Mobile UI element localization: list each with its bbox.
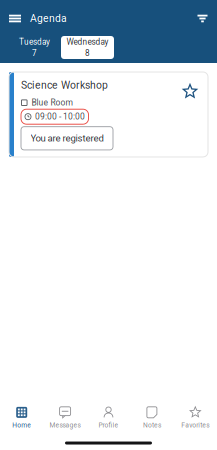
staticText: Profile	[98, 421, 118, 429]
button[interactable]: You are registered	[21, 127, 113, 150]
button[interactable]: Profile	[87, 400, 130, 436]
staticText: 09:00 - 10:00	[35, 112, 85, 122]
staticText: Wednesday	[66, 37, 108, 47]
button[interactable]: Home	[0, 400, 43, 436]
button[interactable]: Favorite	[184, 79, 202, 90]
staticText: Home	[12, 421, 31, 429]
staticText: Tuesday	[19, 37, 50, 47]
staticText: Science Workshop	[21, 79, 108, 91]
staticText: You are registered	[30, 133, 103, 144]
button[interactable]: Messages	[43, 400, 87, 436]
button[interactable]: Notes	[130, 400, 174, 436]
staticText: Messages	[50, 421, 81, 429]
button[interactable]: Menu	[0, 0, 30, 33]
staticText: Blue Room	[31, 98, 72, 108]
button[interactable]: Tuesday	[8, 36, 61, 59]
button[interactable]: Filter	[188, 0, 217, 33]
staticText: 8	[85, 48, 90, 58]
button[interactable]: Favorites	[174, 400, 217, 436]
button[interactable]: Science Workshop	[9, 72, 208, 157]
staticText: Notes	[143, 421, 161, 429]
button[interactable]: Wednesday	[61, 36, 114, 59]
staticText: Agenda	[30, 12, 67, 25]
staticText: Favorites	[181, 421, 209, 429]
staticText: 7	[32, 48, 37, 58]
